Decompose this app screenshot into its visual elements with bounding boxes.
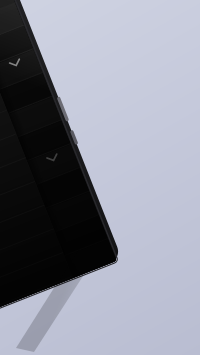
button[interactable]: Phone showing dark settings app with nav… bbox=[0, 0, 200, 355]
